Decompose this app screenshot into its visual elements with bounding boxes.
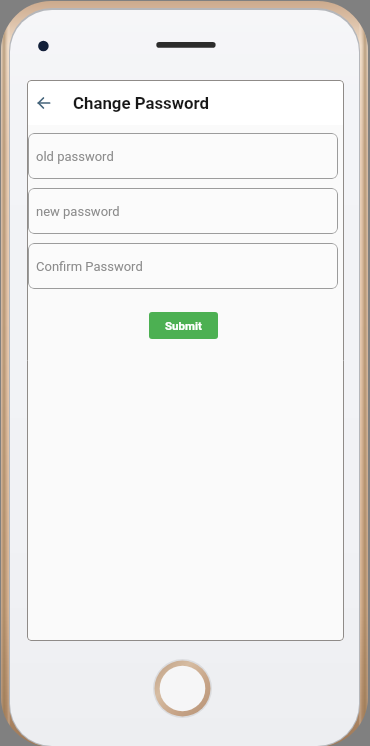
staticText: old password: [36, 149, 114, 164]
button[interactable]: Confirm Password: [28, 243, 338, 289]
staticText: Confirm Password: [36, 259, 143, 274]
button[interactable]: new password: [28, 188, 338, 234]
staticText: Change Password: [73, 93, 210, 113]
staticText: Submit: [165, 319, 202, 332]
button[interactable]: old password: [28, 133, 338, 179]
staticText: new password: [36, 204, 120, 219]
button[interactable]: Submit: [149, 312, 218, 339]
button[interactable]: Back: [29, 88, 59, 118]
